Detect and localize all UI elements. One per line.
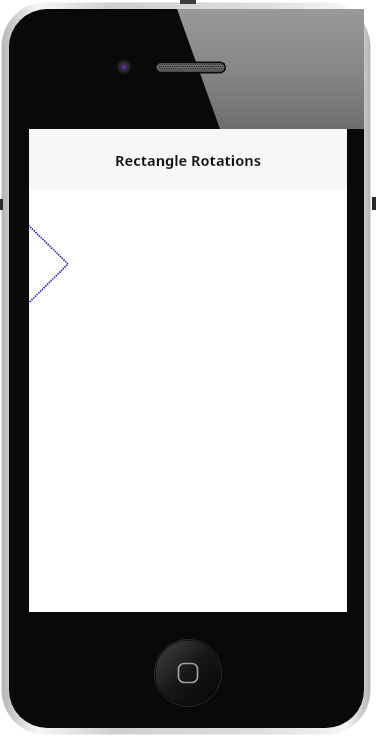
staticText: Rectangle Rotations — [115, 150, 261, 170]
button[interactable]: Rectangle Rotations — [29, 129, 347, 190]
button[interactable]: Rotating rectangle canvas — [29, 190, 347, 612]
